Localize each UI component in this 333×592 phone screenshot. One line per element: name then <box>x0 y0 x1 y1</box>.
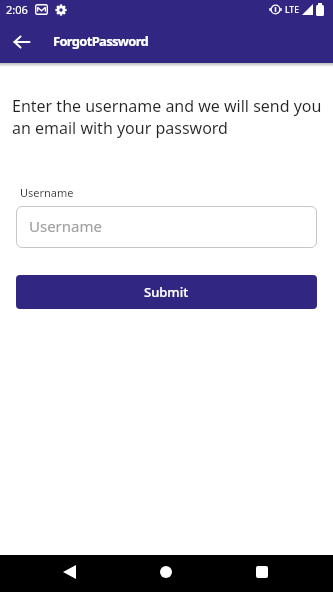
button[interactable] <box>146 555 186 592</box>
staticText: Username <box>29 216 102 236</box>
button[interactable]: Username <box>16 206 317 248</box>
button[interactable]: Submit <box>16 275 317 309</box>
staticText: ForgotPassword <box>53 32 149 50</box>
button[interactable] <box>242 555 282 592</box>
button[interactable] <box>49 555 89 592</box>
button[interactable] <box>0 19 44 63</box>
staticText: LTE <box>285 4 299 16</box>
staticText: 2:06 <box>6 2 28 17</box>
staticText: Username <box>20 185 74 200</box>
staticText: Enter the username and we will send you … <box>12 95 322 139</box>
staticText: Submit <box>144 283 189 301</box>
